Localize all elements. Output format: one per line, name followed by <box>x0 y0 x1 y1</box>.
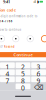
button[interactable]: 2 <box>16 62 30 68</box>
staticText: Didn't get it? <box>0 45 3 48</box>
staticText: 1 <box>5 62 9 68</box>
staticText: 6 <box>37 69 41 75</box>
button[interactable]: 8 <box>16 76 30 82</box>
staticText: Resend <box>4 45 15 48</box>
button[interactable]: ⌫ <box>31 84 46 89</box>
staticText: Continue <box>13 52 32 57</box>
staticText: 5 <box>21 69 25 75</box>
button[interactable]: 9 <box>31 76 46 82</box>
staticText: 0 <box>21 84 25 89</box>
button[interactable]: Resend <box>4 45 15 48</box>
staticText: 9:41 <box>3 0 10 4</box>
staticText: 2 <box>21 62 25 68</box>
staticText: 9 <box>37 76 41 82</box>
staticText: ◗ <box>37 0 39 4</box>
button[interactable]: Continue <box>0 52 46 57</box>
staticText: 3 <box>37 62 41 68</box>
staticText: +1 (555) 014-7788 <box>0 19 13 23</box>
staticText: Verification code <box>0 7 16 12</box>
staticText: We sent a 6-digit confirmation code to <box>0 14 38 18</box>
button[interactable]: 0 <box>16 84 30 89</box>
button[interactable]: 4 <box>0 69 15 75</box>
button[interactable]: 6 <box>31 69 46 75</box>
staticText: Enter it below to continue <box>0 28 22 31</box>
button[interactable]: 3 <box>31 62 46 68</box>
button[interactable]: 1 <box>0 62 15 68</box>
button[interactable]: 7 <box>0 76 15 82</box>
staticText: ıll <box>33 0 36 4</box>
staticText: 8 <box>21 76 25 82</box>
staticText: 7 <box>5 76 9 82</box>
button[interactable]: 5 <box>16 69 30 75</box>
staticText: ⌫ <box>34 84 43 89</box>
staticText: 4 <box>5 69 9 75</box>
